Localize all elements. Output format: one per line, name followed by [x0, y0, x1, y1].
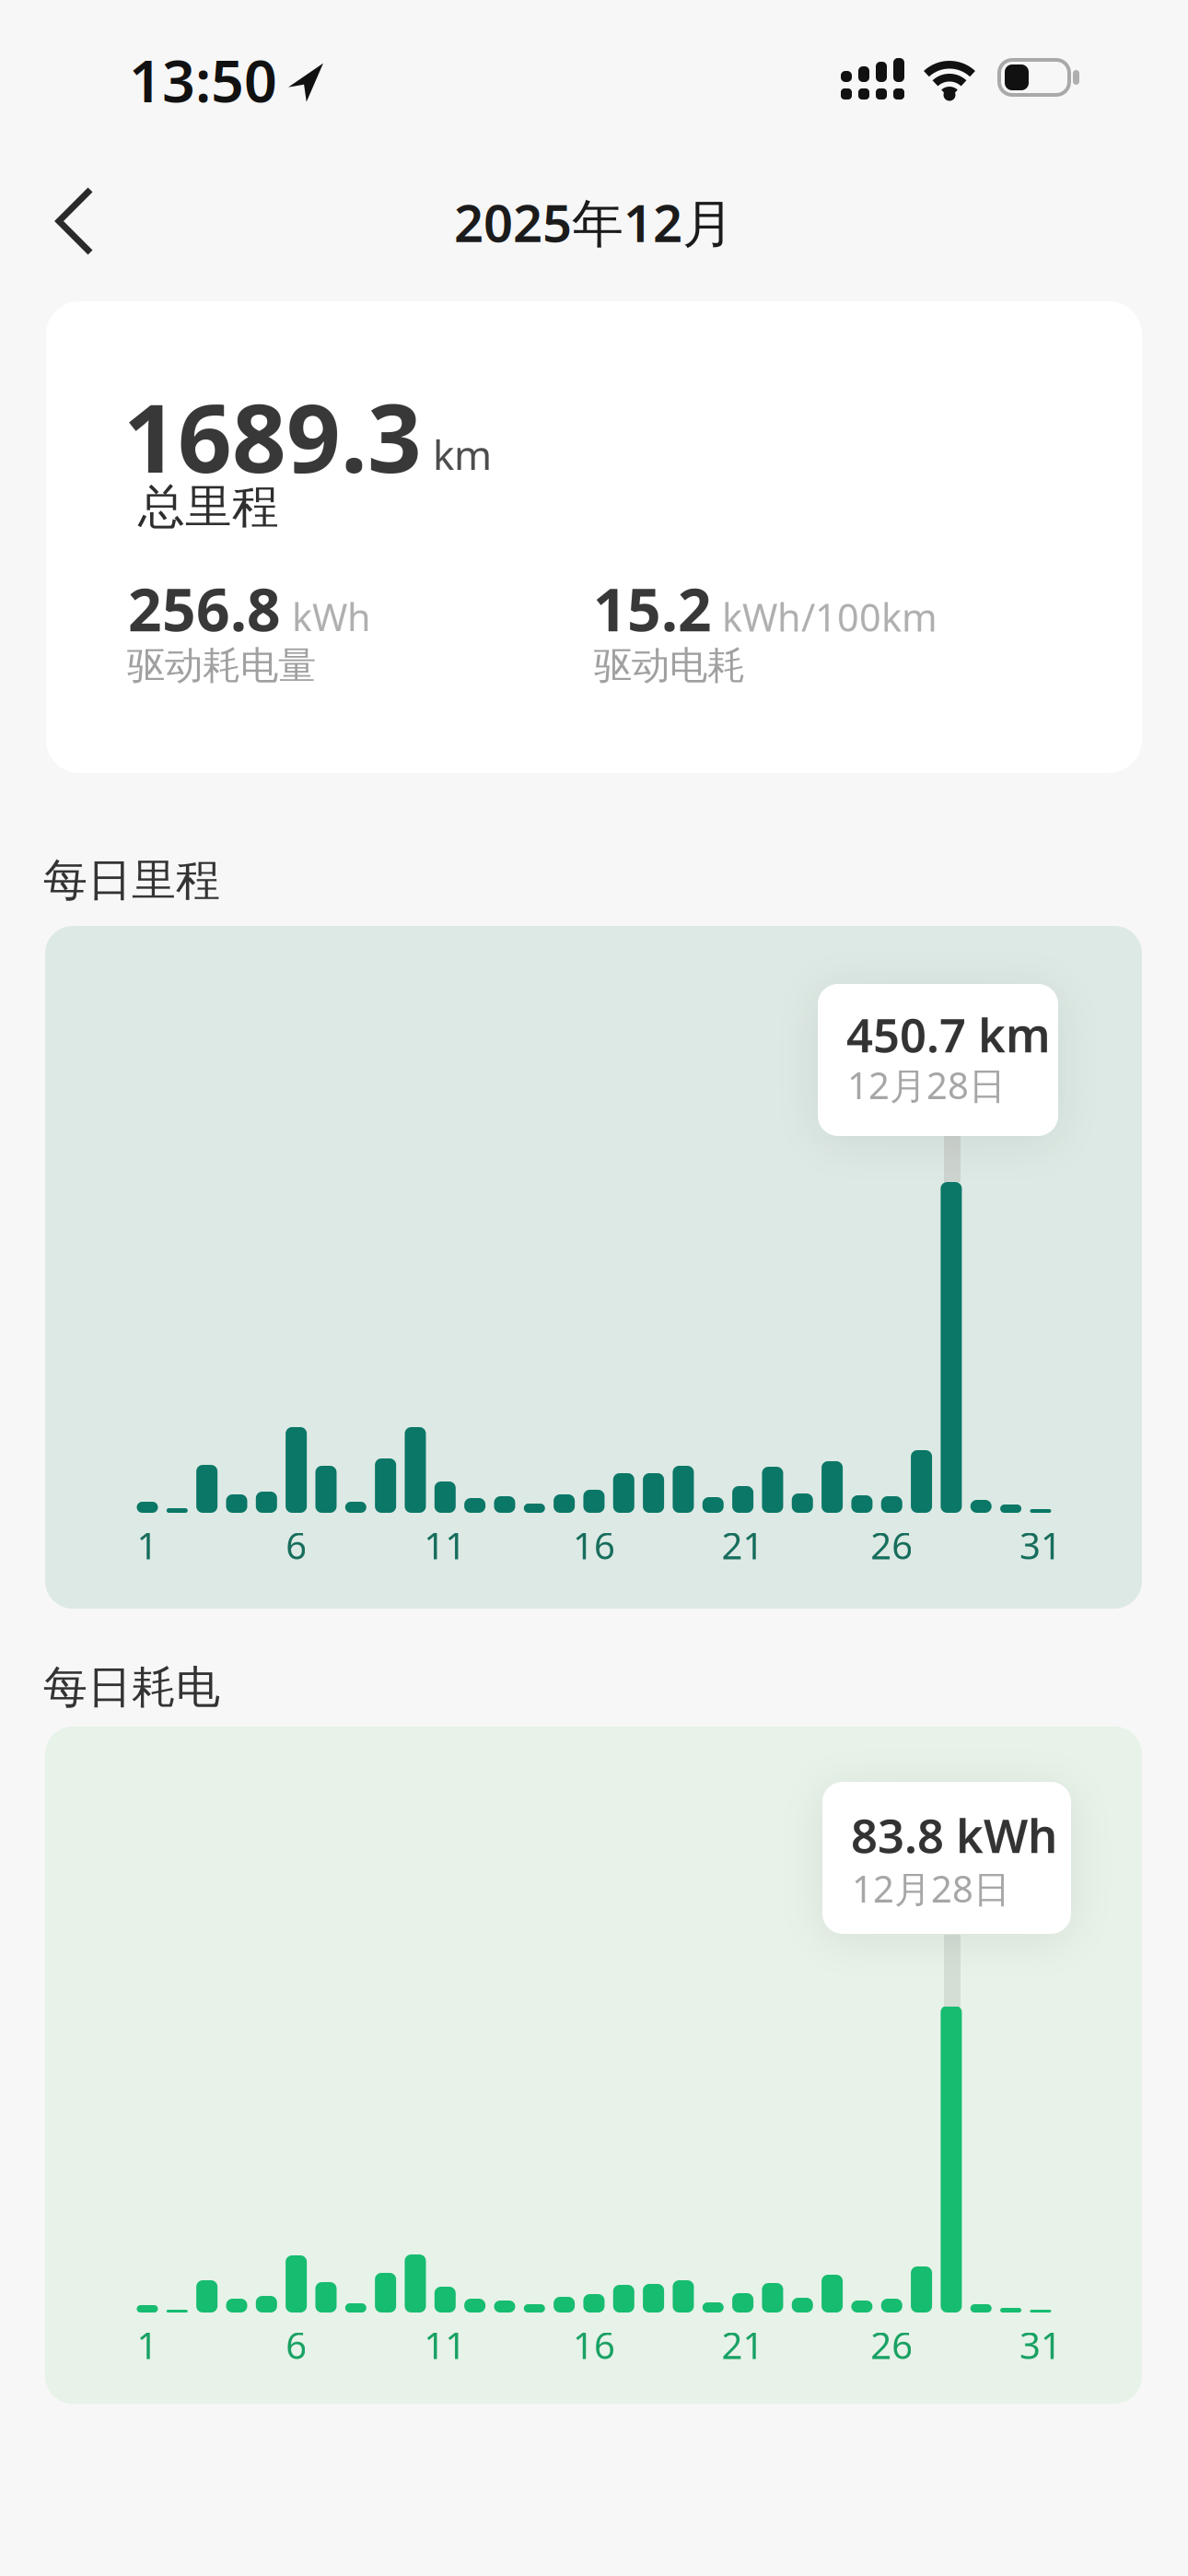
staticText: kWh [292, 591, 371, 642]
staticText: 31 [1019, 1521, 1062, 1569]
button[interactable] [41, 171, 109, 271]
staticText: 26 [870, 1521, 913, 1569]
staticText: 21 [722, 2320, 764, 2369]
staticText: 16 [573, 2320, 615, 2369]
staticText: km [433, 427, 492, 481]
staticText: 2025年12月 [454, 188, 734, 256]
staticText: 6 [286, 2320, 307, 2369]
staticText: 26 [870, 2320, 913, 2369]
staticText: 11 [424, 2320, 466, 2369]
staticText: kWh/100km [722, 591, 938, 642]
staticText: 1 [137, 2320, 158, 2369]
staticText: 13:50 [129, 41, 277, 118]
staticText: 15.2 [593, 569, 712, 648]
staticText: 6 [286, 1521, 307, 1569]
staticText: 83.8 kWh [851, 1804, 1057, 1866]
staticText: 21 [722, 1521, 764, 1569]
staticText: 每日耗电 [43, 1660, 220, 1715]
staticText: 11 [424, 1521, 466, 1569]
staticText: 12月28日 [852, 1864, 1010, 1913]
staticText: 16 [573, 1521, 615, 1569]
staticText: 31 [1019, 2320, 1062, 2369]
staticText: 12月28日 [847, 1060, 1006, 1109]
staticText: 256.8 [128, 569, 281, 648]
staticText: 每日里程 [43, 853, 220, 907]
staticText: 驱动电耗 [594, 642, 745, 689]
staticText: 450.7 km [846, 1003, 1051, 1065]
staticText: 驱动耗电量 [127, 642, 316, 689]
staticText: 1689.3 [123, 373, 422, 499]
staticText: 1 [137, 1521, 158, 1569]
staticText: 总里程 [138, 478, 279, 535]
